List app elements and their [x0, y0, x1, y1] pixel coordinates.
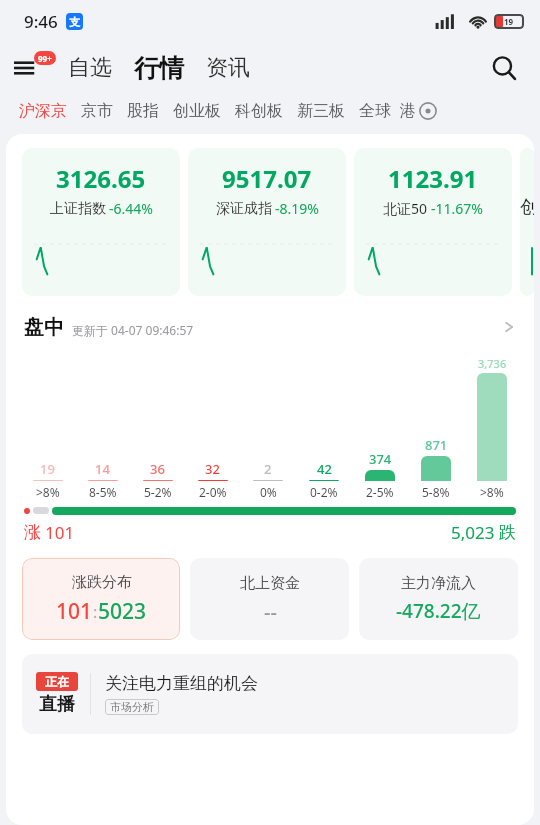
staticText: 港: [400, 101, 412, 121]
staticText: 正在: [45, 674, 69, 689]
button[interactable]: 行情: [130, 53, 188, 84]
staticText: 支: [69, 15, 80, 29]
staticText: 5023: [98, 597, 147, 626]
staticText: 资讯: [206, 54, 250, 82]
staticText: 自选: [68, 54, 112, 82]
staticText: -478.22亿: [396, 598, 481, 624]
staticText: 2-0%: [199, 484, 227, 500]
button[interactable]: 创业板: [168, 101, 226, 121]
button[interactable]: More tabs: [416, 99, 440, 123]
staticText: 沪深京: [19, 101, 67, 121]
button[interactable]: Menu: [14, 51, 54, 85]
staticText: :: [93, 601, 98, 623]
staticText: 14: [95, 460, 110, 478]
button[interactable]: 全球: [354, 101, 396, 121]
staticText: >8%: [480, 484, 504, 500]
staticText: 3126.65: [56, 162, 146, 195]
button[interactable]: 新三板: [292, 101, 350, 121]
staticText: 创: [520, 196, 534, 219]
button[interactable]: 自选: [64, 54, 116, 82]
button[interactable]: Search: [484, 48, 524, 88]
staticText: 3,736: [478, 356, 507, 371]
staticText: 9:46: [24, 10, 58, 33]
staticText: 市场分析: [110, 700, 154, 714]
staticText: 跌: [499, 522, 516, 543]
staticText: --: [264, 598, 277, 625]
staticText: 42: [317, 460, 332, 478]
staticText: 涨跌分布: [72, 573, 132, 592]
staticText: 374: [369, 450, 392, 468]
staticText: 2-5%: [366, 484, 394, 500]
button[interactable]: 北上资金: [190, 558, 349, 640]
staticText: 创业板: [173, 101, 221, 121]
staticText: 32: [205, 460, 220, 478]
staticText: 北上资金: [240, 574, 300, 593]
staticText: 2: [264, 460, 272, 478]
other: More: [502, 320, 516, 334]
button[interactable]: 盘中: [6, 312, 534, 342]
staticText: 19: [504, 16, 514, 27]
staticText: 0%: [260, 484, 277, 500]
staticText: 上证指数: [50, 200, 106, 218]
staticText: 更新于 04-07 09:46:57: [72, 322, 194, 338]
staticText: -8.19%: [275, 199, 319, 218]
button[interactable]: 科创板: [230, 101, 288, 121]
button[interactable]: 主力净流入: [359, 558, 518, 640]
staticText: 5-2%: [144, 484, 172, 500]
staticText: 科创板: [235, 101, 283, 121]
staticText: >8%: [36, 484, 60, 500]
button[interactable]: 3126.65: [22, 148, 180, 296]
staticText: 北证50: [383, 199, 428, 218]
staticText: 京市: [81, 101, 113, 121]
staticText: 股指: [127, 101, 159, 121]
staticText: -11.67%: [431, 199, 483, 218]
button[interactable]: 资讯: [202, 54, 254, 82]
staticText: 36: [150, 460, 165, 478]
button[interactable]: 沪深京: [14, 101, 72, 121]
button[interactable]: 创: [520, 148, 534, 296]
staticText: 新三板: [297, 101, 345, 121]
staticText: 101: [45, 521, 75, 544]
button[interactable]: 京市: [76, 101, 118, 121]
staticText: 关注电力重组的机会: [105, 673, 258, 694]
staticText: 直播: [39, 693, 75, 716]
staticText: 8-5%: [89, 484, 117, 500]
staticText: -6.44%: [109, 199, 153, 218]
staticText: 99+: [38, 53, 52, 64]
staticText: 5,023: [451, 521, 495, 544]
button[interactable]: 1123.91: [354, 148, 512, 296]
staticText: 19: [40, 460, 55, 478]
staticText: 1123.91: [388, 162, 478, 195]
button[interactable]: 9517.07: [188, 148, 346, 296]
staticText: 深证成指: [216, 200, 272, 218]
staticText: 5-8%: [422, 484, 450, 500]
staticText: 全球: [359, 101, 391, 121]
button[interactable]: 正在: [22, 654, 518, 734]
staticText: 行情: [134, 53, 184, 84]
staticText: 涨: [24, 522, 41, 543]
staticText: 盘中: [24, 315, 64, 340]
staticText: 871: [425, 436, 448, 454]
button[interactable]: 股指: [122, 101, 164, 121]
button[interactable]: 涨跌分布: [22, 558, 180, 640]
staticText: 0-2%: [310, 484, 338, 500]
staticText: 101: [56, 597, 93, 626]
staticText: 9517.07: [222, 162, 312, 195]
staticText: 主力净流入: [401, 574, 476, 593]
